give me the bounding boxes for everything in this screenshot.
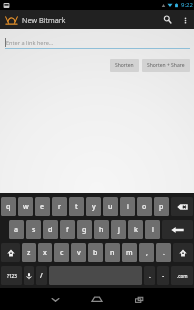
staticText: e [40,202,45,212]
staticText: - [162,271,165,281]
staticText: l [152,225,154,235]
staticText: g [82,225,87,235]
button[interactable]: i [120,197,135,216]
staticText: r [58,202,61,212]
button[interactable] [1,243,20,262]
staticText: . [163,248,165,258]
staticText: . [149,271,151,281]
staticText: v [77,248,81,258]
button[interactable]: b [88,243,103,262]
staticText: o [142,202,147,212]
button[interactable]: c [54,243,69,262]
button[interactable]: e [35,197,50,216]
staticText: f [66,225,69,235]
button[interactable]: Shorten [110,59,139,72]
button[interactable]: - [157,266,169,285]
staticText: q [6,202,11,212]
button[interactable]: m [122,243,137,262]
button[interactable]: l [145,220,160,239]
button[interactable]: Shorten + Share [142,59,190,72]
button[interactable]: t [69,197,84,216]
button[interactable]: u [103,197,118,216]
button[interactable]: App icon [3,12,19,28]
staticText: y [92,202,96,212]
staticText: j [118,225,120,235]
staticText: z [27,248,31,258]
button[interactable]: , [139,243,154,262]
staticText: / [40,271,43,281]
button[interactable] [162,220,193,239]
button[interactable]: j [111,220,126,239]
staticText: h [99,225,104,235]
button[interactable]: Recent apps [118,288,160,310]
button[interactable]: r [52,197,67,216]
button[interactable] [24,266,34,285]
staticText: n [110,248,115,258]
button[interactable]: v [71,243,86,262]
button[interactable]: Search [158,10,177,29]
button[interactable]: Hide keyboard [34,288,76,310]
button[interactable]: .com [171,266,193,285]
staticText: ?123 [7,273,17,279]
staticText: Enter a link here... [6,39,54,47]
staticText: New Bitmark [22,15,66,25]
button[interactable]: y [86,197,101,216]
staticText: Shorten [115,62,134,69]
button[interactable]: / [36,266,47,285]
staticText: x [43,248,47,258]
button[interactable]: z [22,243,36,262]
staticText: t [75,202,78,212]
staticText: u [108,202,113,212]
staticText: a [14,225,19,235]
staticText: s [32,225,36,235]
button[interactable]: x [38,243,52,262]
button[interactable]: d [43,220,58,239]
button[interactable]: . [144,266,155,285]
button[interactable]: . [156,243,171,262]
staticText: d [48,225,53,235]
staticText: .com [177,273,188,279]
button[interactable]: w [18,197,33,216]
staticText: k [134,225,138,235]
button[interactable]: a [9,220,24,239]
button[interactable]: g [77,220,92,239]
staticText: m [126,248,133,258]
staticText: c [60,248,64,258]
staticText: p [159,202,164,212]
button[interactable]: s [26,220,41,239]
button[interactable]: k [128,220,143,239]
button[interactable]: h [94,220,109,239]
staticText: Shorten + Share [147,62,185,69]
button[interactable]: q [1,197,16,216]
button[interactable]: o [137,197,152,216]
button[interactable] [173,243,193,262]
button[interactable]: ?123 [1,266,22,285]
staticText: 9:22 [181,1,193,9]
button[interactable]: p [154,197,169,216]
button[interactable]: f [60,220,75,239]
button[interactable]: Home [76,288,118,310]
button[interactable] [171,197,193,216]
staticText: w [23,202,29,212]
staticText: , [146,248,148,258]
button[interactable]: More options [177,12,193,28]
staticText: b [93,248,98,258]
button[interactable]: n [105,243,120,262]
staticText: i [127,202,129,212]
